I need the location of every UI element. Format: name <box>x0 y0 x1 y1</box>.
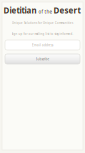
staticText: Email address <box>32 43 53 47</box>
staticText: Dietitian of the Desert <box>3 5 80 16</box>
staticText: Unique Solutions for Unique Communities <box>12 21 73 25</box>
button[interactable]: Email address <box>5 40 80 50</box>
staticText: Sign up for our mailing list to stay inf… <box>11 32 73 36</box>
button[interactable]: Subscribe <box>5 54 80 64</box>
staticText: Subscribe <box>35 57 49 61</box>
